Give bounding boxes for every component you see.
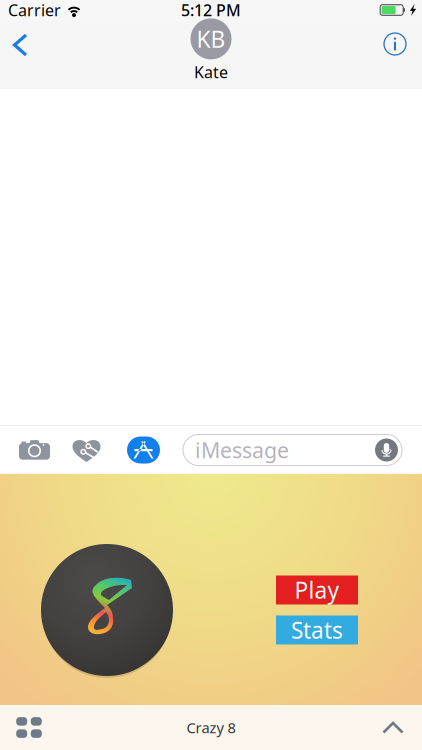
staticText: iMessage [195, 436, 289, 464]
staticText: 5:12 PM [181, 0, 241, 21]
button[interactable]: Back [2, 22, 42, 66]
button[interactable]: Play [276, 575, 358, 604]
button[interactable]: Details [375, 22, 415, 66]
staticText: Stats [291, 615, 343, 645]
button[interactable]: Digital Touch [72, 437, 101, 463]
button[interactable]: Camera [19, 437, 50, 463]
staticText: Play [294, 575, 339, 605]
button[interactable]: KB [190, 18, 231, 83]
button[interactable]: App Store [127, 436, 160, 463]
staticText: Kate [194, 61, 228, 83]
button[interactable]: App drawer [14, 714, 44, 740]
staticText: Carrier [8, 0, 61, 21]
button[interactable]: Expand [378, 714, 408, 740]
staticText: Crazy 8 [186, 718, 235, 737]
staticText: KB [196, 24, 225, 54]
button[interactable]: Dictate [375, 438, 398, 461]
button[interactable]: Stats [276, 615, 358, 644]
